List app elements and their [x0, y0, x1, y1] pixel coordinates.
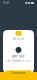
staticText: jane@example.com: [6, 59, 30, 62]
staticText: Jane Doe: [12, 54, 25, 58]
staticText: Continue: [11, 71, 25, 75]
button[interactable]: Continue: [5, 70, 32, 75]
staticText: 9:41: [3, 1, 10, 5]
staticText: Welcome: [12, 37, 24, 41]
